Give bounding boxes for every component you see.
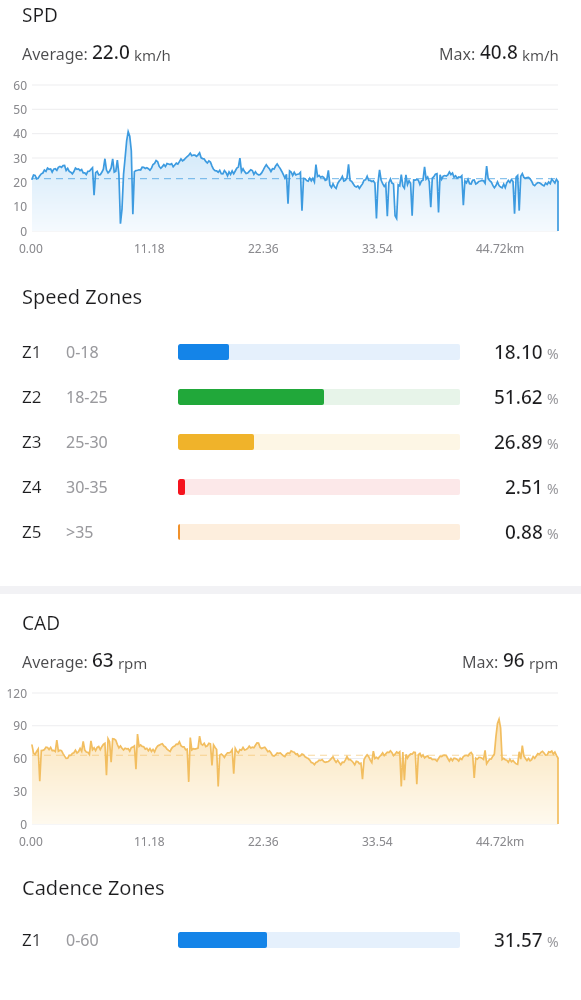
button[interactable]: Z5	[0, 509, 581, 554]
staticText: rpm	[114, 653, 148, 673]
staticText: CAD	[22, 610, 61, 636]
staticText: 51.62	[494, 384, 543, 410]
staticText: Average:	[22, 651, 92, 673]
staticText: %	[547, 389, 559, 408]
staticText: 96	[503, 647, 525, 673]
staticText: Z5	[22, 520, 66, 543]
staticText: 0-18	[66, 341, 178, 363]
staticText: 50	[0, 101, 27, 117]
staticText: >35	[66, 521, 178, 543]
staticText: 0	[0, 223, 27, 239]
staticText: 44.72km	[476, 833, 525, 849]
staticText: %	[547, 524, 559, 543]
staticText: 0.00	[19, 240, 43, 256]
staticText: %	[547, 932, 559, 951]
staticText: 2.51	[505, 474, 543, 500]
staticText: 11.18	[134, 240, 165, 256]
staticText: 0	[0, 816, 27, 832]
staticText: 90	[0, 717, 27, 733]
staticText: 22.36	[248, 833, 279, 849]
staticText: 20	[0, 174, 27, 190]
staticText: 25-30	[66, 431, 178, 453]
staticText: SPD	[22, 2, 58, 28]
button[interactable]: Z1	[0, 917, 581, 962]
staticText: Z4	[22, 475, 66, 498]
staticText: Z1	[22, 928, 66, 951]
staticText: Z1	[22, 340, 66, 363]
staticText: rpm	[525, 653, 559, 673]
staticText: 10	[0, 198, 27, 214]
staticText: 22.0	[92, 39, 130, 65]
staticText: Speed Zones	[22, 283, 143, 310]
staticText: Z3	[22, 430, 66, 453]
staticText: 33.54	[362, 833, 393, 849]
staticText: %	[547, 479, 559, 498]
staticText: %	[547, 434, 559, 453]
staticText: 30-35	[66, 476, 178, 498]
staticText: 30	[0, 150, 27, 166]
button[interactable]: Z4	[0, 464, 581, 509]
staticText: 44.72km	[476, 240, 525, 256]
staticText: %	[547, 344, 559, 363]
staticText: Cadence Zones	[22, 874, 165, 901]
staticText: 22.36	[248, 240, 279, 256]
staticText: 0.88	[505, 519, 543, 545]
staticText: 60	[0, 750, 27, 766]
staticText: 120	[0, 685, 27, 701]
staticText: 30	[0, 783, 27, 799]
staticText: 26.89	[494, 429, 543, 455]
staticText: 0-60	[66, 929, 178, 951]
staticText: km/h	[518, 45, 559, 65]
staticText: 31.57	[494, 927, 543, 953]
button[interactable]: Z3	[0, 419, 581, 464]
staticText: 18-25	[66, 386, 178, 408]
staticText: 40.8	[480, 39, 518, 65]
staticText: 33.54	[362, 240, 393, 256]
staticText: Max:	[439, 43, 480, 65]
staticText: 40	[0, 125, 27, 141]
staticText: Average:	[22, 43, 92, 65]
staticText: Max:	[462, 651, 503, 673]
button[interactable]: Z1	[0, 329, 581, 374]
staticText: 63	[92, 647, 114, 673]
staticText: Z2	[22, 385, 66, 408]
staticText: 11.18	[134, 833, 165, 849]
staticText: 60	[0, 77, 27, 93]
staticText: km/h	[130, 45, 171, 65]
staticText: 0.00	[19, 833, 43, 849]
staticText: 18.10	[494, 339, 543, 365]
button[interactable]: Z2	[0, 374, 581, 419]
